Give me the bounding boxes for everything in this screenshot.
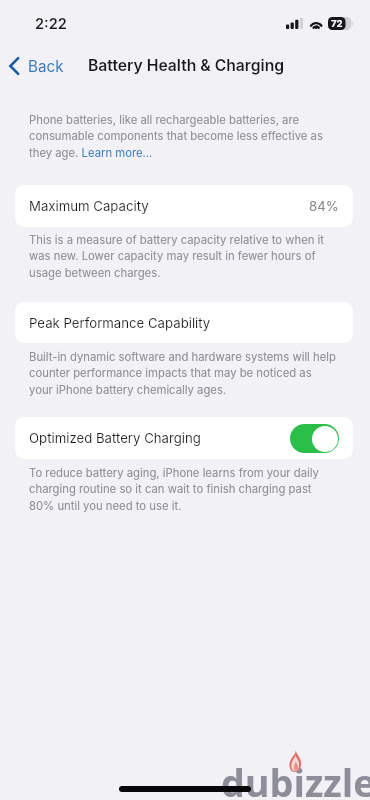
staticText: To reduce battery aging, iPhone learns f…: [29, 466, 338, 513]
staticText: Built-in dynamic software and hardware s…: [29, 350, 338, 397]
staticText: 72: [331, 18, 343, 30]
staticText: dubizzle: [221, 757, 370, 800]
staticText: Optimized Battery Charging: [29, 430, 201, 446]
button[interactable]: Peak Performance Capability: [15, 302, 353, 343]
staticText: Back: [28, 57, 64, 75]
button[interactable]: Optimized Battery Charging: [15, 417, 353, 459]
staticText: This is a measure of battery capacity re…: [29, 233, 338, 280]
staticText: Battery Health & Charging: [88, 56, 285, 75]
button[interactable]: Maximum Capacity: [15, 185, 353, 227]
staticText: Phone batteries, like all rechargeable b…: [29, 113, 338, 160]
staticText: 2:22: [35, 15, 67, 33]
staticText: 84%: [309, 198, 339, 214]
staticText: Maximum Capacity: [29, 198, 149, 214]
button[interactable]: Optimized Battery Charging: [290, 424, 339, 453]
staticText: Peak Performance Capability: [29, 315, 211, 331]
button[interactable]: Back: [5, 53, 68, 79]
